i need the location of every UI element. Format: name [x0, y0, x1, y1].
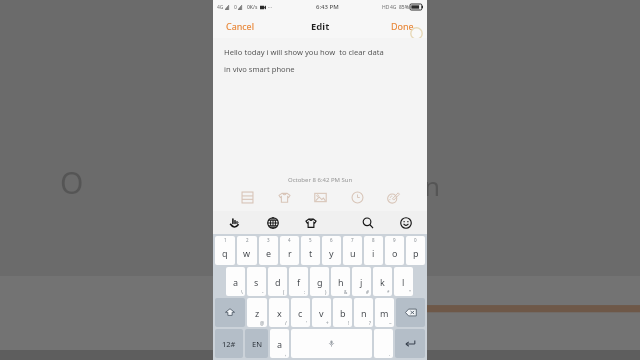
staticText: 12#	[222, 339, 236, 349]
staticText: k	[380, 276, 385, 288]
staticText: *	[387, 289, 390, 295]
staticText: p	[413, 247, 419, 259]
button[interactable]: 3	[259, 236, 278, 265]
staticText: 3	[267, 237, 270, 243]
button[interactable]: h	[331, 267, 350, 296]
staticText: o	[392, 247, 398, 259]
staticText: 4G	[217, 4, 224, 11]
staticText: a	[233, 276, 239, 288]
button[interactable]: Backspace	[396, 298, 425, 327]
button[interactable]: x	[269, 298, 289, 327]
button[interactable]: d	[268, 267, 287, 296]
staticText: 85%	[399, 4, 409, 11]
button[interactable]: l	[394, 267, 413, 296]
staticText: b	[340, 307, 346, 319]
button[interactable]: 0	[406, 236, 425, 265]
staticText: c	[298, 307, 303, 319]
staticText: u	[350, 247, 356, 259]
staticText: z	[255, 307, 260, 319]
button[interactable]: f	[289, 267, 308, 296]
staticText: Edit	[311, 20, 330, 33]
staticText: h	[338, 276, 344, 288]
staticText: 7	[351, 237, 354, 243]
button[interactable]: m	[375, 298, 394, 327]
staticText: q	[222, 247, 228, 259]
button[interactable]: Format list	[239, 189, 255, 205]
staticText: 5	[309, 237, 312, 243]
staticText: '	[306, 320, 308, 326]
staticText: g	[317, 276, 323, 288]
staticText: f	[297, 276, 301, 288]
staticText: 2	[246, 237, 249, 243]
button[interactable]: g	[310, 267, 329, 296]
button[interactable]: k	[373, 267, 392, 296]
button[interactable]: a	[226, 267, 245, 296]
button[interactable]: s	[247, 267, 266, 296]
button[interactable]: Space	[291, 329, 372, 358]
button[interactable]: Handwriting	[225, 213, 244, 232]
staticText: 4	[288, 237, 291, 243]
button[interactable]: a	[270, 329, 289, 358]
button[interactable]: .	[374, 329, 393, 358]
button[interactable]: Reminder	[349, 189, 365, 205]
button[interactable]: Cancel	[222, 17, 259, 35]
staticText: )	[325, 289, 327, 295]
button[interactable]: 9	[385, 236, 404, 265]
staticText: 0K/s	[247, 4, 258, 11]
staticText: !	[348, 320, 350, 326]
button[interactable]: Shift	[215, 298, 245, 327]
staticText: s	[254, 276, 259, 288]
button[interactable]: n	[354, 298, 373, 327]
staticText: y	[329, 247, 334, 259]
button[interactable]: z	[247, 298, 267, 327]
button[interactable]: Search	[358, 213, 377, 232]
staticText: i	[372, 247, 375, 259]
button[interactable]: 6	[322, 236, 341, 265]
button[interactable]: 4	[280, 236, 299, 265]
staticText: EN	[252, 339, 262, 349]
button[interactable]: Done	[387, 17, 418, 35]
button[interactable]: b	[333, 298, 352, 327]
staticText: 6:43 PM	[316, 3, 339, 11]
staticText: Cancel	[226, 20, 255, 32]
staticText: Done	[391, 20, 414, 32]
button[interactable]: Keyboard skin	[301, 213, 320, 232]
staticText: a	[277, 338, 283, 350]
button[interactable]: EN	[245, 329, 268, 358]
staticText: x	[277, 307, 282, 319]
button[interactable]: Skin	[276, 189, 292, 205]
button[interactable]: c	[291, 298, 310, 327]
button[interactable]: v	[312, 298, 331, 327]
button[interactable]: 7	[343, 236, 362, 265]
staticText: .	[389, 351, 391, 357]
staticText: r	[288, 247, 292, 259]
staticText: ~	[389, 320, 392, 326]
staticText: j	[360, 276, 363, 288]
staticText: n	[361, 307, 367, 319]
button[interactable]: Language	[263, 213, 282, 232]
staticText: 8	[372, 237, 375, 243]
staticText: &	[344, 289, 348, 295]
button[interactable]: 2	[237, 236, 257, 265]
button[interactable]: Emoji	[396, 213, 415, 232]
staticText: "	[409, 289, 411, 295]
button[interactable]: 5	[301, 236, 320, 265]
button[interactable]: 1	[215, 236, 235, 265]
staticText: in vivo smart phone	[224, 64, 295, 74]
staticText: ···	[268, 4, 273, 11]
staticText: w	[243, 247, 251, 259]
button[interactable]: Insert image	[312, 189, 328, 205]
staticText: ?	[369, 320, 371, 326]
staticText: -	[262, 289, 264, 295]
staticText: @	[260, 320, 265, 326]
staticText: October 8 6:42 PM Sun	[288, 176, 353, 184]
button[interactable]: Theme	[385, 189, 401, 205]
staticText: n	[424, 168, 441, 203]
button[interactable]: Enter	[395, 329, 425, 358]
button[interactable]: 8	[364, 236, 383, 265]
button[interactable]: 12#	[215, 329, 243, 358]
button[interactable]: j	[352, 267, 371, 296]
staticText: 0	[414, 237, 417, 243]
staticText: 0	[234, 4, 237, 11]
staticText: Hello today i will show you how to clear…	[224, 47, 384, 57]
